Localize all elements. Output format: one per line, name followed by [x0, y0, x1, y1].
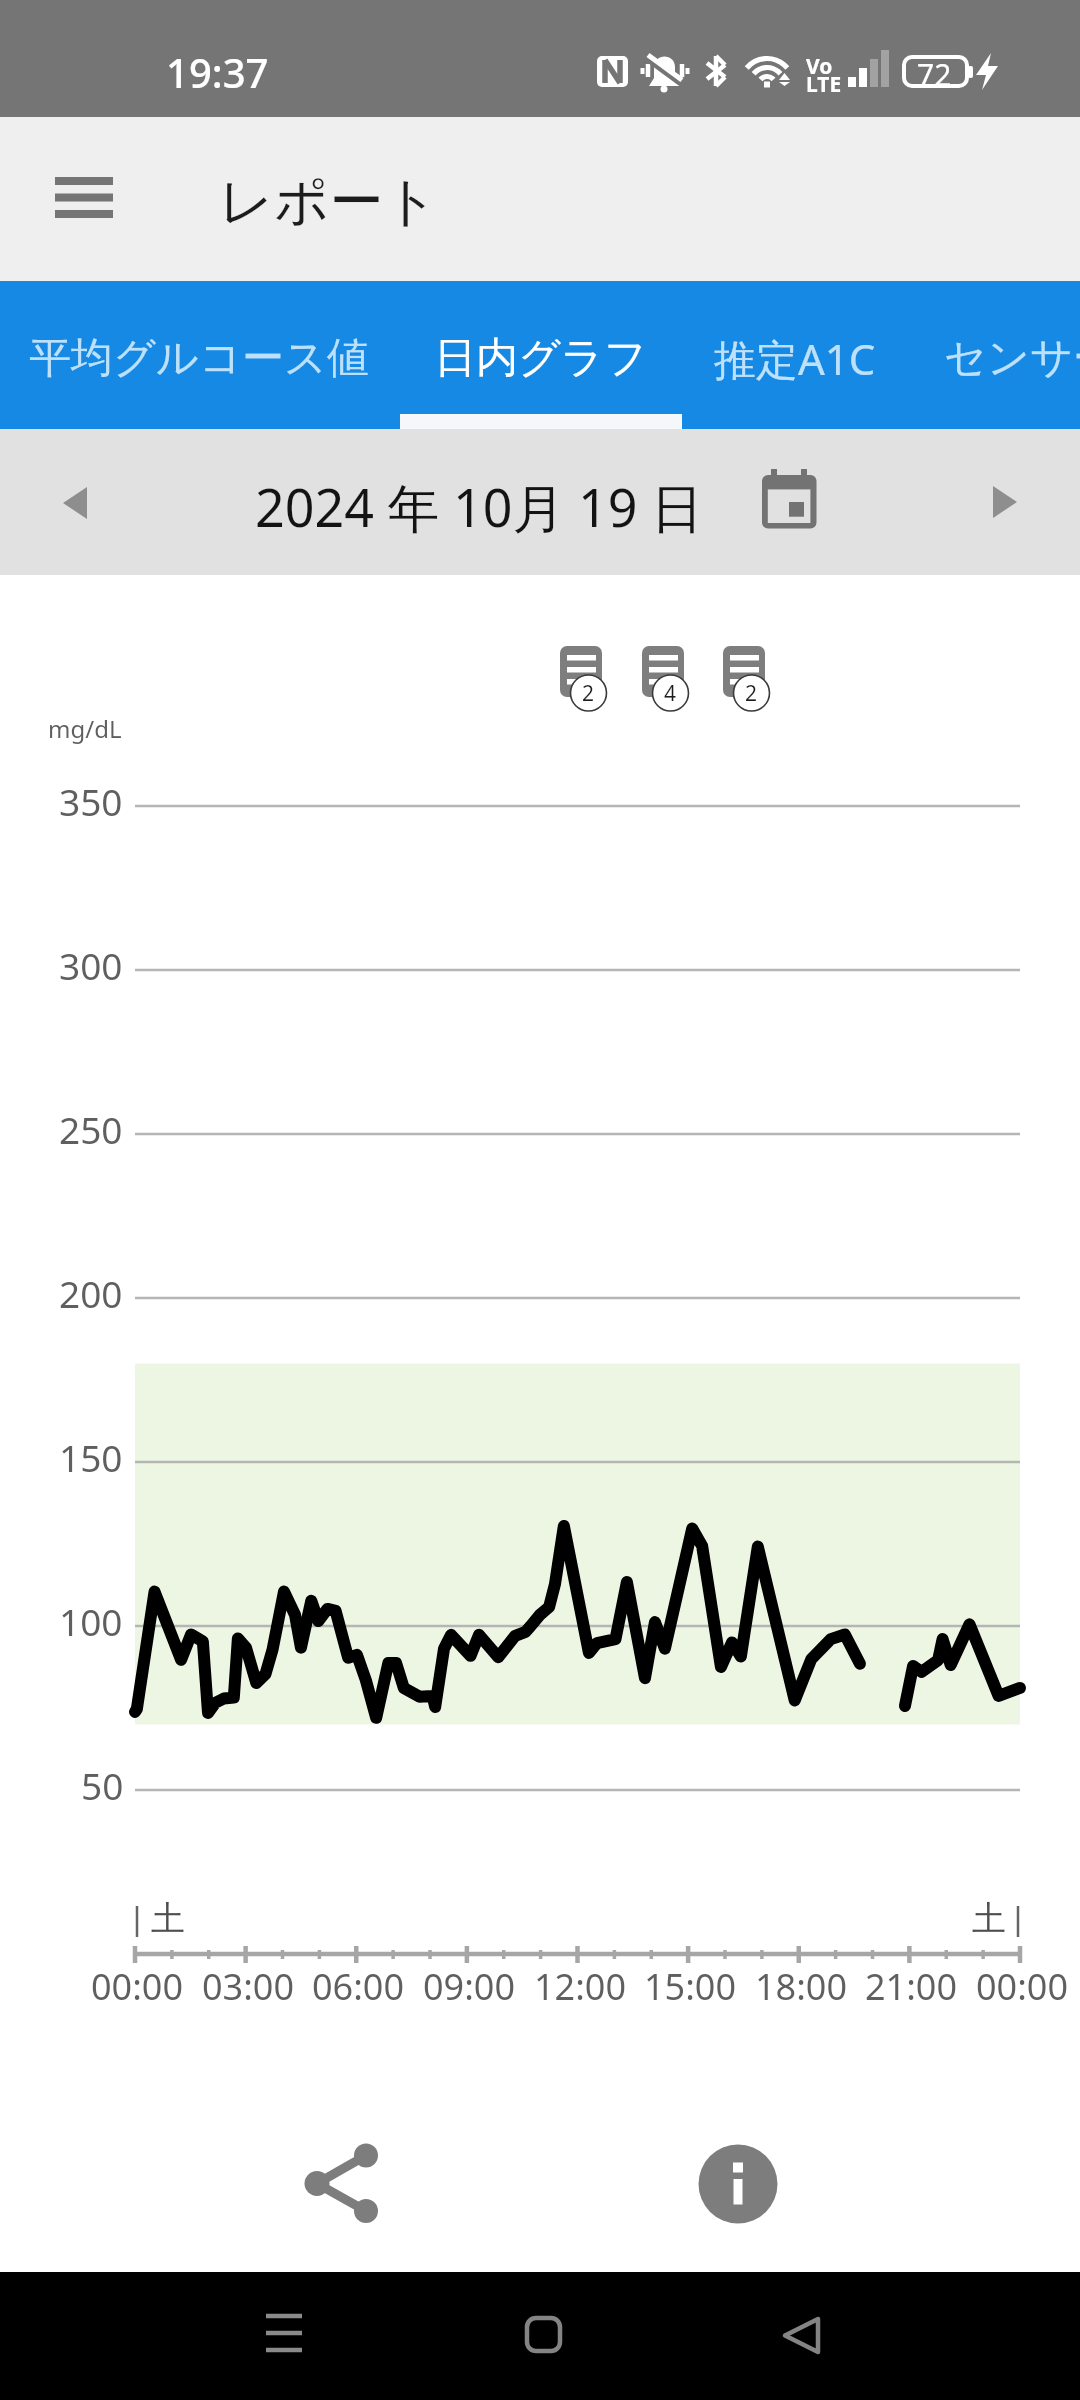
- staticText: 350: [59, 776, 123, 826]
- staticText: 06:00: [312, 1962, 405, 2011]
- button[interactable]: センサー: [944, 284, 1080, 432]
- button[interactable]: Recent apps: [224, 2276, 344, 2396]
- staticText: mg/dL: [48, 712, 122, 745]
- staticText: レポート: [219, 168, 439, 236]
- staticText: 12:00: [534, 1962, 627, 2011]
- staticText: 4: [664, 679, 677, 708]
- staticText: 09:00: [423, 1962, 516, 2011]
- staticText: 2: [745, 679, 758, 708]
- button[interactable]: Previous day: [26, 457, 118, 549]
- staticText: 21:00: [865, 1962, 958, 2011]
- staticText: Vo: [806, 52, 833, 81]
- button[interactable]: Navigation menu: [30, 149, 134, 249]
- staticText: 200: [59, 1268, 123, 1318]
- staticText: 300: [59, 940, 123, 990]
- staticText: 日内グラフ: [434, 332, 647, 385]
- button[interactable]: 平均グルコース値: [29, 284, 369, 432]
- staticText: 72: [917, 54, 952, 95]
- staticText: 150: [59, 1432, 123, 1482]
- staticText: 推定A1C: [714, 330, 876, 387]
- staticText: LTE: [806, 70, 842, 99]
- staticText: 03:00: [202, 1962, 295, 2011]
- staticText: 15:00: [644, 1962, 737, 2011]
- staticText: 100: [59, 1596, 123, 1646]
- button[interactable]: 推定A1C: [714, 284, 876, 432]
- staticText: 2: [582, 679, 595, 708]
- staticText: 土: [972, 1897, 1006, 1940]
- staticText: 50: [81, 1760, 124, 1810]
- button[interactable]: Next day: [962, 456, 1054, 548]
- button[interactable]: Pick date: [761, 450, 831, 520]
- staticText: 19:37: [166, 45, 269, 99]
- staticText: 土: [151, 1897, 185, 1940]
- button[interactable]: Home: [480, 2276, 600, 2396]
- staticText: 250: [59, 1104, 123, 1154]
- staticText: センサー: [944, 332, 1080, 385]
- button[interactable]: 日内グラフ: [434, 284, 647, 432]
- staticText: 18:00: [755, 1962, 848, 2011]
- button[interactable]: Share: [258, 2124, 378, 2244]
- staticText: 平均グルコース値: [29, 332, 369, 385]
- staticText: 00:00: [976, 1962, 1069, 2011]
- staticText: 00:00: [91, 1962, 184, 2011]
- staticText: 2024 年 10月 19 日: [255, 471, 704, 542]
- button[interactable]: Back: [740, 2276, 860, 2396]
- button[interactable]: Information: [678, 2124, 798, 2244]
